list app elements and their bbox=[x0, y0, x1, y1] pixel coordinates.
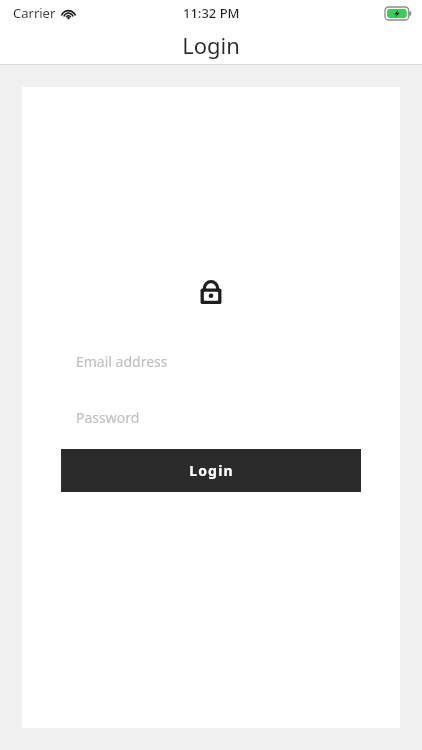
staticText: Carrier bbox=[13, 4, 56, 22]
button[interactable]: Password bbox=[61, 400, 361, 434]
staticText: Password bbox=[76, 408, 140, 427]
staticText: 11:32 PM bbox=[183, 4, 240, 22]
staticText: Login bbox=[182, 30, 240, 60]
staticText: Login bbox=[189, 461, 234, 480]
other: Lock bbox=[200, 278, 222, 304]
button[interactable]: Login bbox=[61, 449, 361, 492]
staticText: Email address bbox=[76, 352, 168, 371]
button[interactable]: Email address bbox=[61, 344, 361, 378]
